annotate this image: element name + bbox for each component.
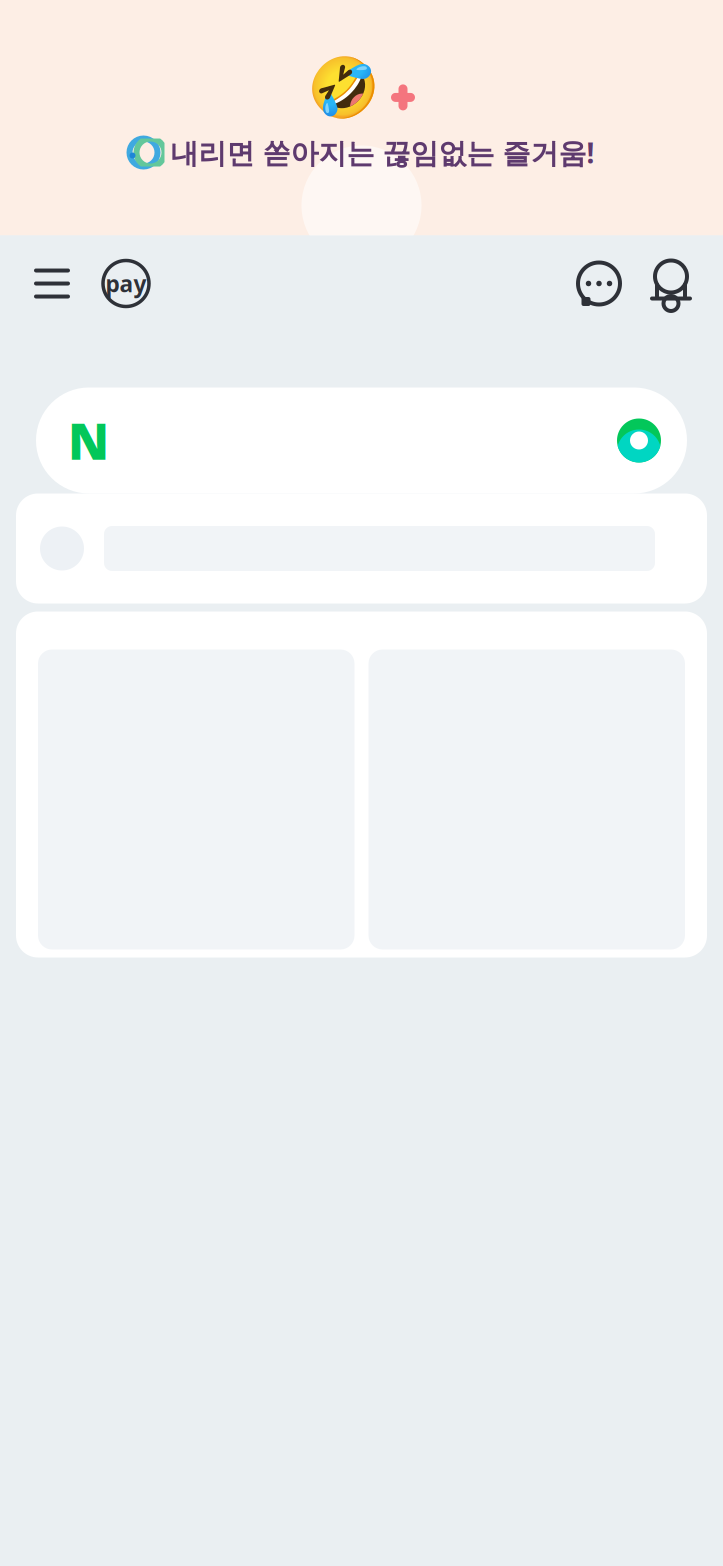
button[interactable]: Naver Pay — [100, 257, 152, 309]
button[interactable]: Notifications — [645, 257, 697, 309]
button[interactable]: Menu — [26, 257, 78, 309]
staticText: 내리면 쏟아지는 끊임없는 즐거움! — [170, 134, 594, 171]
button[interactable]: Search — [36, 387, 687, 493]
staticText: 🤣 — [307, 55, 380, 122]
button[interactable]: Messages — [573, 257, 625, 309]
staticText: pay — [105, 268, 146, 298]
staticText: N — [68, 408, 109, 473]
